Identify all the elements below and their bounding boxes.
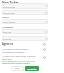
staticText: Europe bbox=[3, 37, 45, 40]
staticText: By registering you accept our bbox=[2, 59, 35, 62]
button[interactable]: Europe bbox=[2, 36, 48, 41]
button[interactable]: Your name bbox=[2, 19, 48, 24]
other: Toggle option bbox=[43, 48, 46, 51]
button[interactable]: • Receive special offers, marketing upda… bbox=[2, 47, 48, 53]
staticText: Register bbox=[27, 67, 37, 70]
other: Toggle agree bbox=[43, 43, 46, 46]
staticText: Select one bbox=[3, 11, 45, 14]
button[interactable]: Back bbox=[11, 66, 24, 71]
other: Toggle option bbox=[43, 56, 46, 59]
button[interactable]: Select type bbox=[2, 3, 48, 9]
staticText: Back bbox=[15, 67, 20, 70]
button[interactable]: Select one bbox=[2, 10, 48, 15]
staticText: • Share my data with trusted partners bbox=[2, 54, 40, 60]
staticText: Name bbox=[2, 15, 9, 18]
button[interactable]: Terms and Privacy Policy bbox=[2, 61, 31, 64]
staticText: New Ticket bbox=[2, 1, 19, 5]
staticText: • Receive special offers, marketing upda… bbox=[2, 47, 40, 53]
staticText: Agree to bbox=[2, 42, 14, 46]
staticText: English bbox=[3, 30, 45, 33]
button[interactable]: English bbox=[2, 29, 48, 34]
button[interactable]: • Share my data with trusted partners bbox=[2, 54, 48, 60]
button[interactable]: Register bbox=[25, 66, 39, 71]
staticText: Region bbox=[2, 34, 10, 37]
staticText: Language bbox=[2, 25, 14, 28]
staticText: Select type bbox=[3, 5, 45, 8]
staticText: Your name bbox=[3, 20, 45, 23]
